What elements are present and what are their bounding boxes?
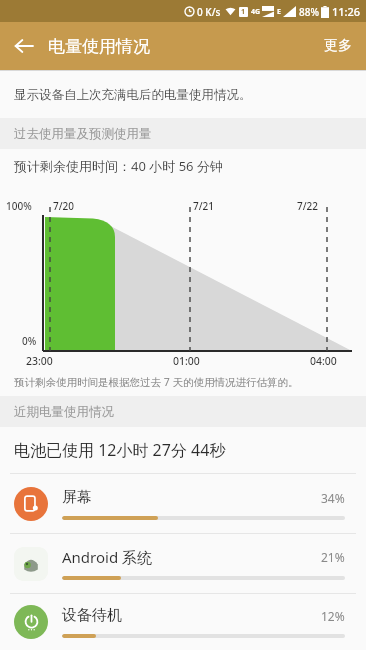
button[interactable]: 更多 bbox=[310, 22, 366, 70]
staticText: 预计剩余使用时间：40 小时 56 分钟 bbox=[14, 157, 223, 175]
staticText: 1 bbox=[241, 7, 246, 17]
staticText: 12% bbox=[321, 608, 345, 624]
staticText: 预计剩余使用时间是根据您过去 7 天的使用情况进行估算的。 bbox=[14, 375, 299, 389]
staticText: 电池已使用 12小时 27分 44秒 bbox=[14, 439, 226, 461]
staticText: 04:00 bbox=[310, 354, 337, 368]
staticText: 23:00 bbox=[26, 354, 53, 368]
staticText: 7/20 bbox=[53, 199, 75, 213]
staticText: 电量使用情况 bbox=[48, 36, 150, 57]
button[interactable]: Back bbox=[0, 22, 48, 70]
staticText: 0% bbox=[22, 334, 37, 348]
button[interactable]: 设备待机 bbox=[0, 594, 366, 650]
staticText: 设备待机 bbox=[62, 606, 321, 625]
staticText: 21% bbox=[321, 549, 345, 565]
staticText: 近期电量使用情况 bbox=[14, 404, 114, 420]
staticText: 100% bbox=[6, 199, 32, 213]
staticText: 更多 bbox=[324, 37, 352, 55]
button[interactable]: Android 系统 bbox=[0, 534, 366, 593]
staticText: 屏幕 bbox=[62, 488, 321, 507]
staticText: Android 系统 bbox=[62, 547, 321, 567]
staticText: 11:26 bbox=[332, 4, 361, 19]
staticText: 88% bbox=[299, 5, 319, 19]
staticText: E bbox=[277, 7, 281, 17]
staticText: 过去使用量及预测使用量 bbox=[14, 126, 152, 142]
staticText: 显示设备自上次充满电后的电量使用情况。 bbox=[14, 87, 252, 103]
staticText: 34% bbox=[321, 490, 345, 506]
staticText: 0 K/s bbox=[197, 5, 221, 19]
staticText: 7/21 bbox=[193, 199, 215, 213]
staticText: 01:00 bbox=[173, 354, 200, 368]
staticText: 4G bbox=[251, 7, 261, 17]
button[interactable]: 屏幕 bbox=[0, 474, 366, 533]
staticText: 7/22 bbox=[297, 199, 319, 213]
